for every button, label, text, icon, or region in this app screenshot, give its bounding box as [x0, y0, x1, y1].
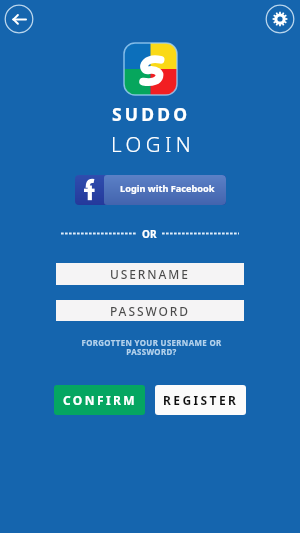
staticText: SUDDO: [112, 102, 191, 126]
button[interactable]: CONFIRM: [54, 385, 145, 415]
button[interactable]: PASSWORD: [56, 300, 244, 321]
staticText: OR: [142, 227, 157, 239]
button[interactable]: REGISTER: [155, 385, 246, 415]
staticText: USERNAME: [110, 266, 190, 282]
staticText: Login with Facebook: [120, 182, 215, 195]
staticText: FORGOTTEN YOUR USERNAME OR PASSWORD?: [81, 338, 222, 357]
button[interactable]: USERNAME: [56, 263, 244, 285]
button[interactable]: Settings: [265, 4, 295, 34]
staticText: LOGIN: [111, 130, 196, 158]
staticText: CONFIRM: [63, 392, 137, 408]
button[interactable]: Login with Facebook: [75, 175, 226, 205]
button[interactable]: FORGOTTEN YOUR USERNAME OR PASSWORD?: [1, 338, 300, 357]
staticText: PASSWORD: [110, 303, 190, 319]
button[interactable]: Back: [4, 4, 34, 34]
staticText: REGISTER: [163, 392, 239, 408]
